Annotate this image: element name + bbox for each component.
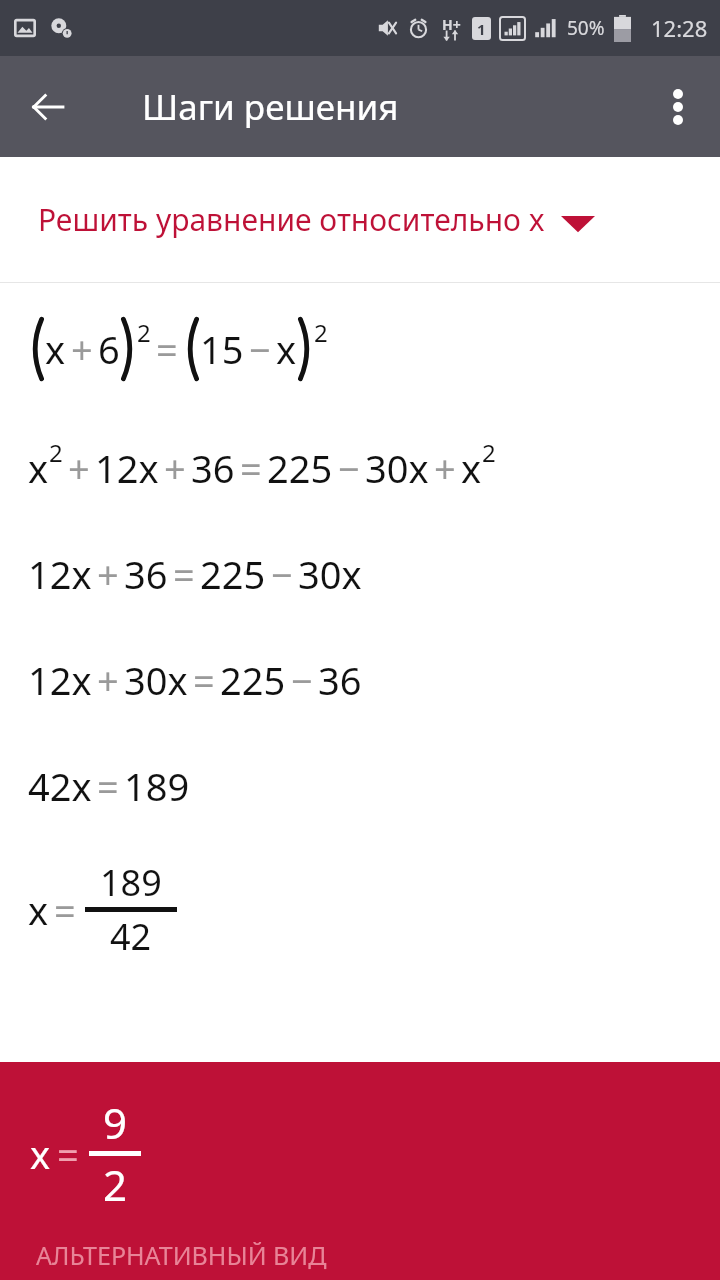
staticText: 9 <box>103 1094 128 1151</box>
staticText: 6 <box>98 323 120 375</box>
staticText: − <box>338 442 360 494</box>
staticText: АЛЬТЕРНАТИВНЫЙ ВИД <box>36 1238 327 1272</box>
staticText: 189 <box>100 858 162 907</box>
staticText: 30x <box>365 442 429 494</box>
staticText: Шаги решения <box>142 83 399 131</box>
staticText: 30x <box>298 548 362 600</box>
staticText: + <box>434 442 456 494</box>
staticText: 189 <box>124 760 190 812</box>
staticText: 2 <box>103 1156 128 1213</box>
staticText: + <box>97 548 119 600</box>
staticText: 50% <box>567 15 605 41</box>
staticText: + <box>97 654 119 706</box>
staticText: 12x <box>95 442 159 494</box>
staticText: = <box>240 442 262 494</box>
staticText: 42x <box>28 760 92 812</box>
staticText: 42 <box>110 912 152 961</box>
staticText: 225 <box>267 442 333 494</box>
staticText: x <box>45 323 66 375</box>
staticText: − <box>291 654 313 706</box>
staticText: 12:28 <box>651 13 708 43</box>
staticText: = <box>156 323 178 375</box>
staticText: 12x <box>28 654 92 706</box>
staticText: − <box>249 323 271 375</box>
staticText: 36 <box>318 654 362 706</box>
staticText: 225 <box>220 654 286 706</box>
staticText: x <box>30 1128 51 1180</box>
staticText: 12x <box>28 548 92 600</box>
staticText: = <box>54 884 76 936</box>
button[interactable]: АЛЬТЕРНАТИВНЫЙ ВИД <box>0 1238 720 1280</box>
button[interactable]: Решить уравнение относительно x <box>0 157 720 282</box>
staticText: = <box>193 654 215 706</box>
staticText: 2 <box>137 316 151 349</box>
staticText: x <box>28 442 49 494</box>
staticText: = <box>57 1128 79 1180</box>
staticText: 36 <box>191 442 235 494</box>
staticText: 2 <box>49 436 63 469</box>
staticText: + <box>68 442 90 494</box>
staticText: 2 <box>482 436 496 469</box>
staticText: 30x <box>124 654 188 706</box>
staticText: x <box>461 442 482 494</box>
staticText: 1 <box>477 19 486 39</box>
staticText: + <box>71 323 93 375</box>
staticText: + <box>164 442 186 494</box>
staticText: 2 <box>314 316 328 349</box>
staticText: = <box>97 760 119 812</box>
staticText: = <box>173 548 195 600</box>
staticText: 225 <box>200 548 266 600</box>
staticText: H+ <box>442 15 461 34</box>
staticText: 15 <box>200 323 244 375</box>
button[interactable]: Back <box>12 71 84 143</box>
staticText: 36 <box>124 548 168 600</box>
staticText: Решить уравнение относительно x <box>38 199 545 240</box>
button[interactable]: More options <box>646 75 710 139</box>
staticText: x <box>276 323 297 375</box>
staticText: − <box>271 548 293 600</box>
staticText: x <box>28 884 49 936</box>
